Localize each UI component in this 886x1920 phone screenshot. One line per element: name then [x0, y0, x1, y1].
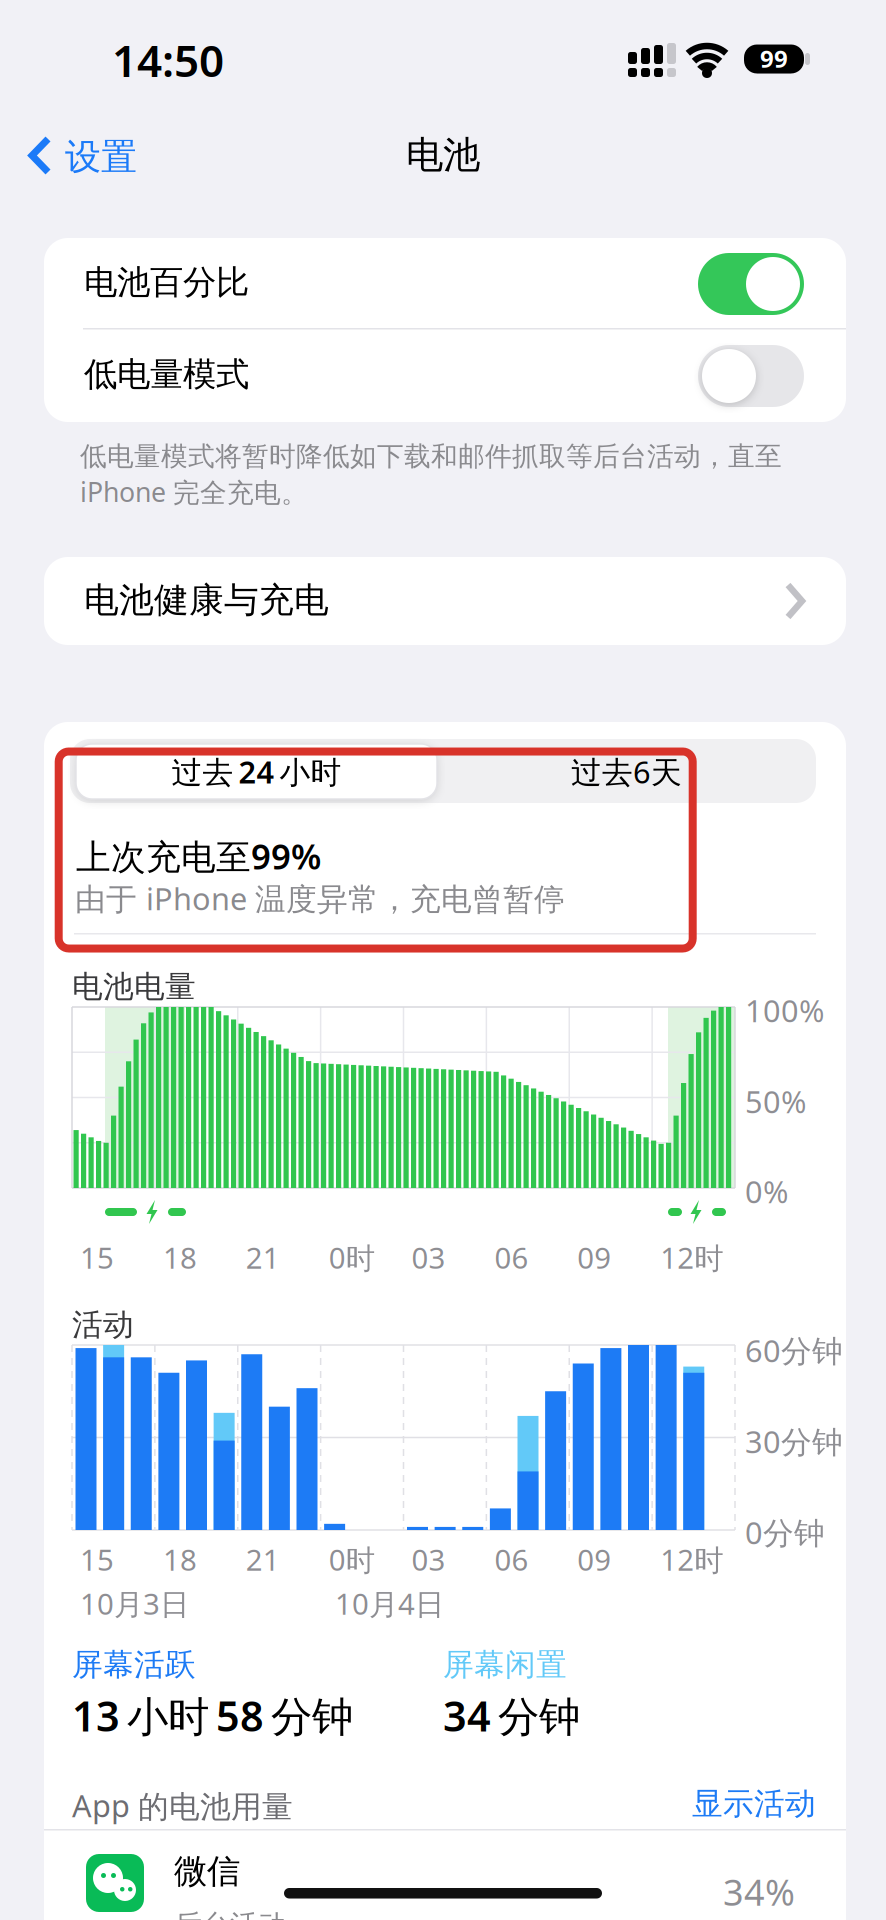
- staticText: 30分钟: [745, 1421, 843, 1462]
- staticText: 100%: [745, 990, 824, 1031]
- staticText: 活动: [72, 1306, 134, 1344]
- staticText: 15: [80, 1540, 114, 1579]
- staticText: 电池百分比: [84, 262, 249, 303]
- staticText: 12时: [660, 1238, 723, 1277]
- staticText: iPhone 完全充电。: [80, 474, 308, 510]
- staticText: 后台活动: [174, 1908, 286, 1920]
- staticText: 0%: [745, 1171, 788, 1212]
- staticText: 13 小时 58 分钟: [72, 1688, 353, 1743]
- staticText: 低电量模式将暂时降低如下载和邮件抓取等后台活动，直至: [80, 440, 782, 473]
- staticText: 06: [494, 1540, 528, 1579]
- staticText: 09: [577, 1540, 611, 1579]
- staticText: 低电量模式: [84, 354, 249, 395]
- staticText: 过去6天: [571, 751, 682, 792]
- button[interactable]: 过去 24 小时: [76, 744, 437, 799]
- staticText: 99: [760, 43, 788, 74]
- staticText: 21: [246, 1238, 280, 1277]
- staticText: 上次充电至99%: [76, 833, 321, 879]
- staticText: 10月3日: [80, 1584, 189, 1623]
- staticText: 60分钟: [745, 1330, 843, 1371]
- staticText: 03: [411, 1238, 445, 1277]
- button[interactable]: 低电量模式: [698, 345, 804, 407]
- button[interactable]: 过去6天: [441, 744, 811, 799]
- button[interactable]: 微信 电池用量 34%: [86, 1851, 802, 1920]
- staticText: 12时: [660, 1540, 723, 1579]
- button[interactable]: 电池健康与充电: [44, 557, 846, 645]
- staticText: 09: [577, 1238, 611, 1277]
- button[interactable]: 显示活动: [692, 1785, 816, 1823]
- staticText: 14:50: [112, 31, 224, 89]
- staticText: 屏幕活跃: [72, 1646, 196, 1684]
- staticText: 0时: [329, 1540, 375, 1579]
- staticText: 微信: [174, 1851, 240, 1892]
- staticText: 50%: [745, 1081, 806, 1122]
- staticText: 03: [411, 1540, 445, 1579]
- staticText: 06: [494, 1238, 528, 1277]
- button[interactable]: 设置 返回: [27, 135, 142, 179]
- staticText: 18: [163, 1540, 197, 1579]
- staticText: 0分钟: [745, 1512, 825, 1553]
- staticText: 电池: [406, 132, 480, 178]
- button[interactable]: 电池百分比: [698, 253, 804, 315]
- staticText: 过去 24 小时: [171, 751, 341, 792]
- staticText: 显示活动: [692, 1785, 816, 1823]
- staticText: 0时: [329, 1238, 375, 1277]
- staticText: 屏幕闲置: [443, 1646, 567, 1684]
- staticText: 电池健康与充电: [84, 579, 329, 622]
- staticText: 34 分钟: [443, 1688, 580, 1743]
- staticText: 由于 iPhone 温度异常，充电曾暂停: [75, 878, 565, 919]
- staticText: 18: [163, 1238, 197, 1277]
- staticText: 34%: [723, 1868, 795, 1916]
- staticText: App 的电池用量: [72, 1785, 293, 1826]
- staticText: 21: [246, 1540, 280, 1579]
- staticText: 设置: [65, 135, 137, 179]
- staticText: 10月4日: [335, 1584, 444, 1623]
- staticText: 15: [80, 1238, 114, 1277]
- staticText: 电池电量: [72, 968, 196, 1006]
